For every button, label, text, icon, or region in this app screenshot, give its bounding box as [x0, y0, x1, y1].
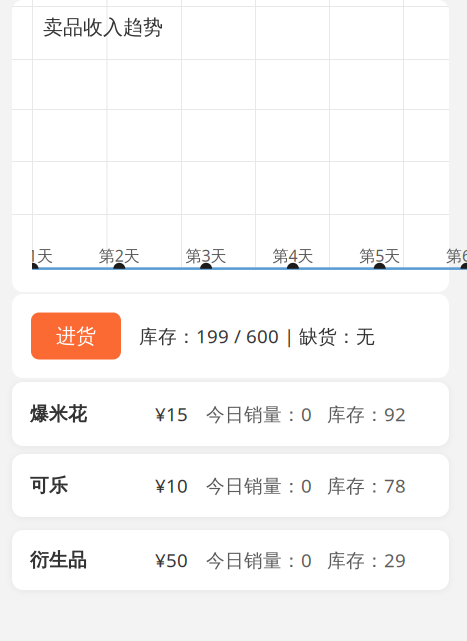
button[interactable]: 爆米花 [12, 382, 449, 446]
button[interactable]: 衍生品 [12, 530, 449, 590]
staticText: 第1天 [12, 245, 53, 266]
button[interactable]: 可乐 [12, 454, 449, 517]
staticText: 第5天 [359, 245, 400, 266]
staticText: ¥15 [155, 402, 188, 426]
staticText: ¥10 [155, 473, 188, 498]
staticText: 卖品收入趋势 [43, 15, 163, 40]
staticText: 今日销量：0 [206, 473, 312, 498]
staticText: 今日销量：0 [206, 402, 312, 426]
staticText: 第3天 [186, 245, 227, 266]
button[interactable]: 进货 [12, 294, 449, 378]
staticText: 第4天 [272, 245, 313, 266]
staticText: 爆米花 [30, 402, 87, 425]
staticText: 库存：92 [327, 402, 406, 426]
staticText: 可乐 [30, 474, 68, 497]
staticText: 库存：78 [327, 473, 406, 498]
staticText: 今日销量：0 [206, 548, 312, 572]
staticText: 衍生品 [30, 548, 87, 571]
staticText: 第2天 [99, 245, 140, 266]
staticText: 库存：199 / 600 | 缺货：无 [139, 324, 375, 348]
staticText: 第6天 [446, 245, 467, 266]
staticText: ¥50 [155, 548, 188, 572]
staticText: 进货 [56, 324, 96, 348]
staticText: 库存：29 [327, 548, 406, 572]
